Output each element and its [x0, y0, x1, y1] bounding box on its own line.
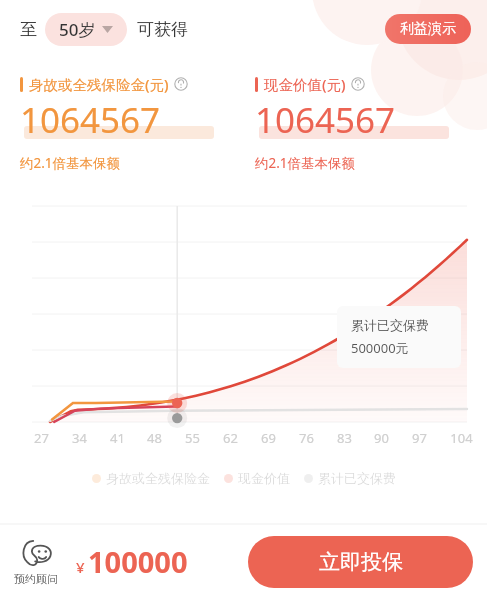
- staticText: 预约顾问: [14, 572, 58, 586]
- staticText: 55: [185, 429, 200, 447]
- staticText: ¥: [76, 557, 85, 577]
- staticText: 34: [72, 429, 87, 447]
- staticText: 1064567: [255, 96, 396, 144]
- button[interactable]: 利益演示: [385, 14, 471, 44]
- staticText: 62: [223, 429, 238, 447]
- button[interactable]: 预约顾问: [10, 537, 62, 586]
- staticText: 身故或全残保险金: [106, 470, 210, 486]
- staticText: 立即投保: [319, 549, 403, 575]
- staticText: 身故或全残保险金(元): [29, 74, 169, 94]
- staticText: 83: [337, 429, 352, 447]
- staticText: 69: [261, 429, 276, 447]
- staticText: 104: [450, 429, 473, 447]
- staticText: 41: [110, 429, 125, 447]
- staticText: 48: [147, 429, 162, 447]
- staticText: 可获得: [137, 19, 188, 40]
- button[interactable]: 立即投保: [248, 536, 473, 588]
- staticText: 500000元: [351, 339, 409, 357]
- staticText: 90: [374, 429, 389, 447]
- staticText: 97: [412, 429, 427, 447]
- staticText: 现金价值(元): [264, 74, 346, 94]
- staticText: 76: [299, 429, 314, 447]
- staticText: 累计已交保费: [318, 470, 396, 486]
- staticText: 累计已交保费: [351, 317, 429, 333]
- staticText: 50岁: [59, 18, 96, 41]
- staticText: 1064567: [20, 96, 161, 144]
- staticText: 100000: [88, 542, 188, 581]
- staticText: 至: [20, 19, 37, 40]
- button[interactable]: 说明: [174, 77, 188, 91]
- staticText: 利益演示: [400, 20, 456, 38]
- staticText: 约2.1倍基本保额: [255, 154, 356, 172]
- staticText: 现金价值: [238, 470, 290, 486]
- button[interactable]: 说明: [351, 77, 365, 91]
- button[interactable]: 50岁: [45, 13, 127, 46]
- staticText: 27: [34, 429, 49, 447]
- staticText: 约2.1倍基本保额: [20, 154, 121, 172]
